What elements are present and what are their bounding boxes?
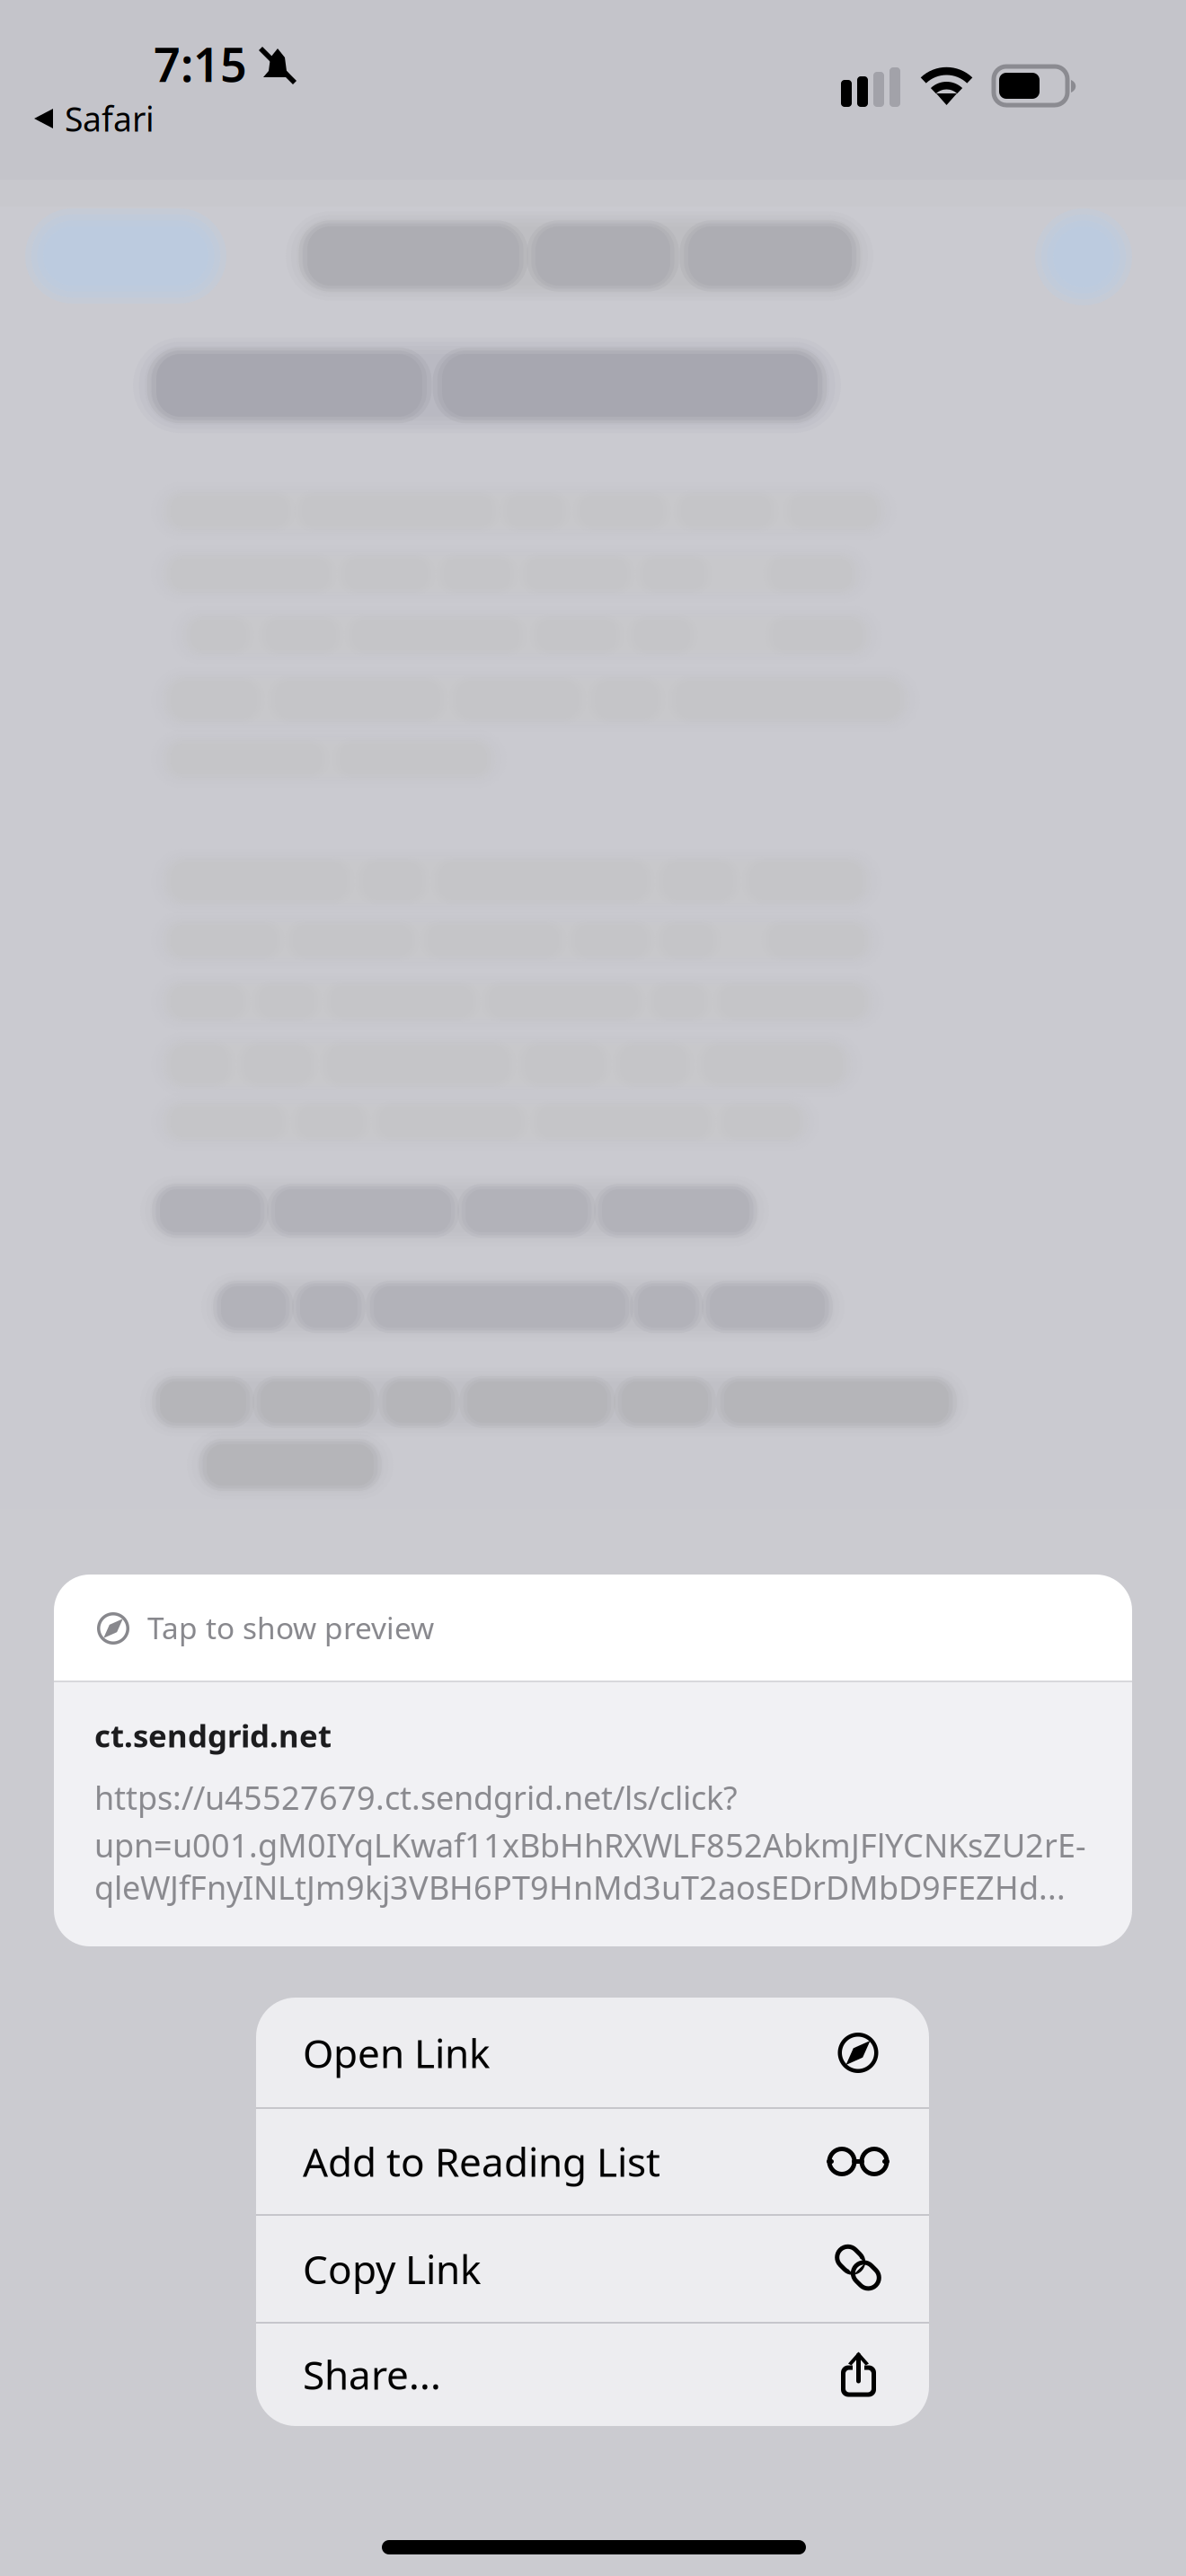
staticText: Safari <box>65 96 155 141</box>
staticText: Open Link <box>303 2027 490 2079</box>
button[interactable]: Tap to show preview <box>54 1575 1132 1946</box>
staticText: 7:15 <box>154 33 247 95</box>
staticText: qleWJfFnyINLtJm9kj3VBH6PT9HnMd3uT2aosEDr… <box>94 1866 1066 1909</box>
staticText: ct.sendgrid.net <box>94 1715 332 1756</box>
staticText: Tap to show preview <box>147 1608 434 1647</box>
staticText: Share... <box>303 2348 441 2401</box>
staticText: Copy Link <box>303 2243 481 2295</box>
button[interactable]: Share... <box>256 2323 929 2426</box>
staticText: upn=u001.gM0IYqLKwaf11xBbHhRXWLF852AbkmJ… <box>94 1823 1086 1866</box>
staticText: Add to Reading List <box>303 2135 660 2188</box>
button[interactable]: Add to Reading List <box>256 2108 929 2215</box>
button[interactable]: Safari <box>0 0 1186 2576</box>
staticText: https://u45527679.ct.sendgrid.net/ls/cli… <box>94 1776 738 1819</box>
button[interactable]: Open Link <box>256 1998 929 2108</box>
button[interactable]: Copy Link <box>256 2215 929 2323</box>
